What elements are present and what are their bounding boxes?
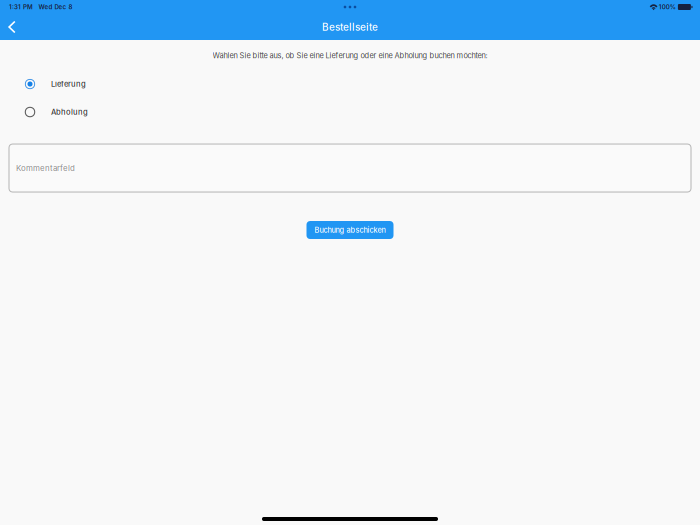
- button[interactable]: Back: [0, 14, 28, 40]
- staticText: Lieferung: [51, 79, 86, 89]
- staticText: Bestellseite: [322, 21, 378, 33]
- staticText: Wed Dec 8: [39, 3, 73, 11]
- button[interactable]: Lieferung: [0, 70, 700, 98]
- button[interactable]: Buchung abschicken: [306, 221, 393, 239]
- staticText: Kommentarfeld: [16, 163, 75, 173]
- button[interactable]: Kommentarfeld: [0, 144, 700, 192]
- button[interactable]: Abholung: [0, 98, 700, 126]
- staticText: Wählen Sie bitte aus, ob Sie eine Liefer…: [212, 51, 487, 60]
- staticText: Buchung abschicken: [314, 226, 385, 234]
- staticText: 100%: [659, 3, 676, 11]
- staticText: Abholung: [51, 107, 88, 117]
- staticText: 1:31 PM: [9, 3, 33, 11]
